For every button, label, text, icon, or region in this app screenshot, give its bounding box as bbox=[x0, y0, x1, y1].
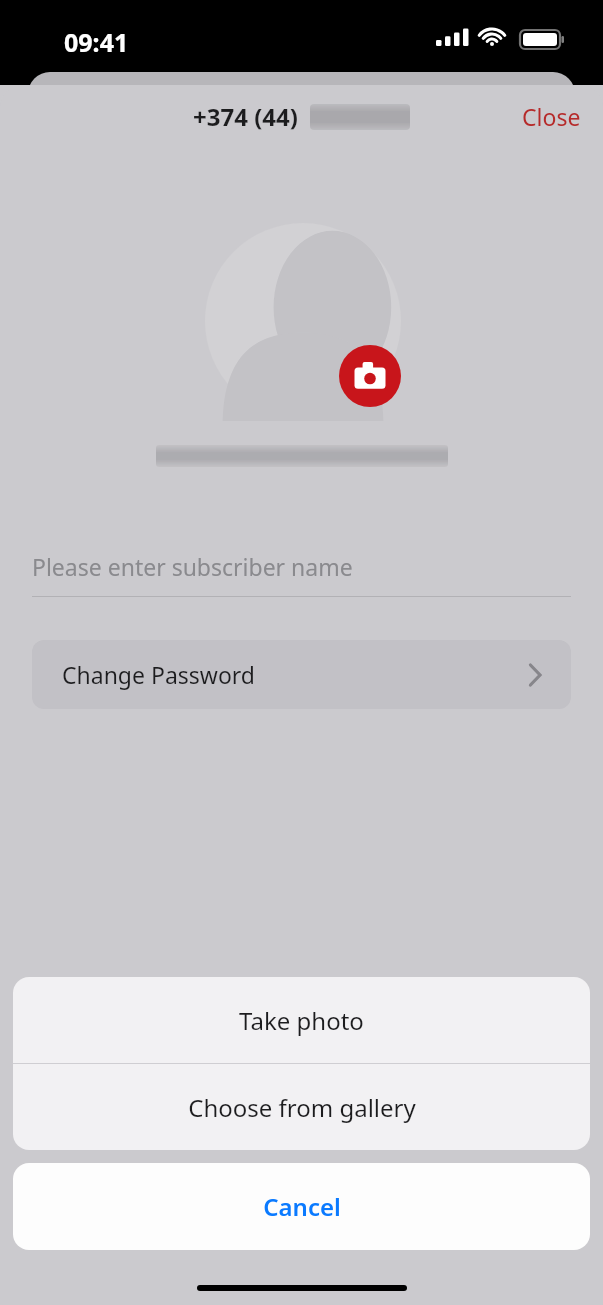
staticText: Choose from gallery bbox=[188, 1091, 416, 1124]
button[interactable]: Change Password bbox=[32, 640, 571, 709]
staticText: +374 (44) bbox=[193, 100, 298, 133]
button[interactable]: Please enter subscriber name bbox=[0, 535, 603, 597]
staticText: Please enter subscriber name bbox=[32, 551, 353, 582]
button[interactable]: Choose from gallery bbox=[13, 1064, 590, 1150]
staticText: Close bbox=[522, 101, 581, 132]
staticText: Change Password bbox=[62, 659, 255, 690]
button[interactable]: Close bbox=[500, 91, 603, 142]
staticText: 09:41 bbox=[64, 25, 129, 59]
button[interactable]: Take photo bbox=[13, 977, 590, 1063]
button[interactable]: Change photo bbox=[339, 345, 401, 407]
button[interactable]: Cancel bbox=[13, 1163, 590, 1250]
staticText: Cancel bbox=[263, 1190, 341, 1223]
staticText: Take photo bbox=[239, 1004, 364, 1037]
